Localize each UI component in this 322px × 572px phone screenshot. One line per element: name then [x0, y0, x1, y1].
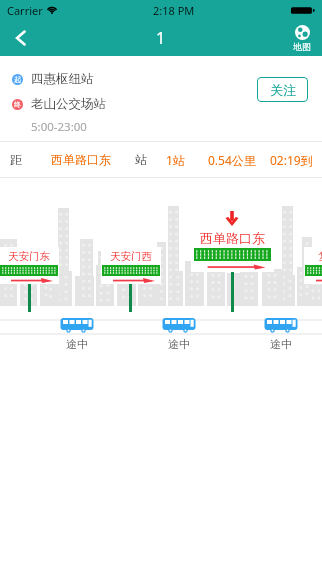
- staticText: 复兴门: [304, 250, 322, 263]
- button[interactable]: Back: [0, 20, 42, 56]
- button[interactable]: Map: [282, 20, 322, 56]
- staticText: 老山公交场站: [31, 96, 106, 112]
- button[interactable]: 途中: [256, 317, 306, 333]
- staticText: 途中: [256, 337, 306, 351]
- staticText: 途中: [154, 337, 204, 351]
- staticText: 0.54公里: [208, 152, 256, 168]
- button[interactable]: 途中: [154, 317, 204, 333]
- staticText: 起: [14, 75, 21, 84]
- staticText: 天安门东: [0, 250, 59, 263]
- staticText: 02:19到: [270, 152, 313, 168]
- staticText: 地图: [293, 41, 311, 52]
- staticText: 1站: [166, 152, 185, 168]
- staticText: Carrier: [7, 3, 43, 18]
- staticText: 终: [14, 100, 21, 109]
- button[interactable]: 关注: [257, 77, 308, 102]
- staticText: 四惠枢纽站: [31, 71, 94, 87]
- staticText: 天安门西: [101, 250, 161, 263]
- button[interactable]: 天安门东: [0, 247, 59, 284]
- button[interactable]: 途中: [52, 317, 102, 333]
- staticText: 距: [10, 152, 22, 167]
- staticText: 1: [156, 27, 166, 49]
- staticText: 站: [135, 152, 147, 167]
- button[interactable]: 复兴门: [304, 247, 322, 284]
- staticText: 5:00-23:00: [31, 119, 87, 135]
- staticText: 途中: [52, 337, 102, 351]
- staticText: 2:18 PM: [153, 3, 195, 18]
- staticText: 西单路口东: [191, 230, 274, 246]
- button[interactable]: 西单路口东: [191, 226, 274, 272]
- button[interactable]: 天安门西: [101, 247, 161, 284]
- staticText: 西单路口东: [51, 152, 111, 167]
- staticText: 关注: [270, 82, 296, 98]
